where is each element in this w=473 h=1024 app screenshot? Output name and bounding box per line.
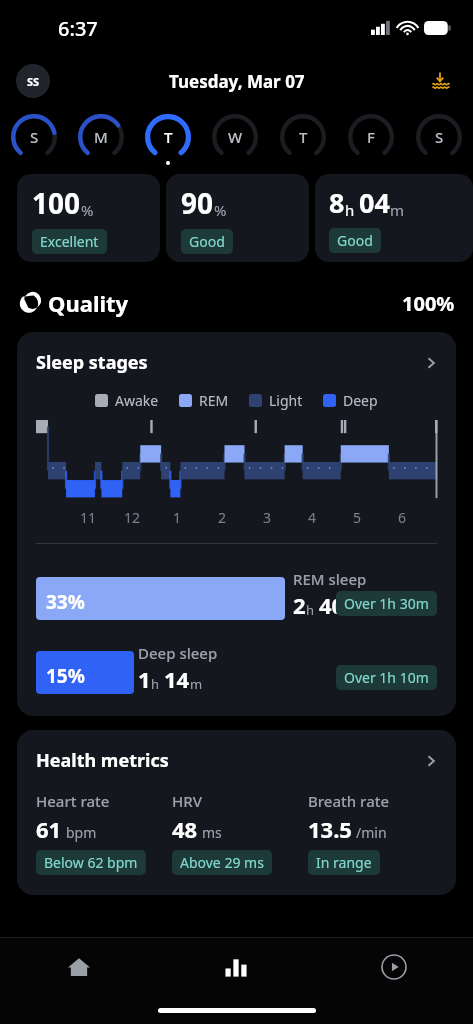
staticText: M [94,127,108,147]
staticText: bpm [66,823,97,842]
staticText: 40 [319,590,345,620]
button[interactable]: Statistics [157,938,315,996]
staticText: T [299,127,308,147]
staticText: m [345,601,358,619]
button[interactable]: T [269,106,337,168]
staticText: % [214,200,227,220]
staticText: Over 1h 10m [344,668,429,687]
staticText: Deep [343,391,378,410]
staticText: 11 [80,508,97,527]
staticText: S [435,127,444,147]
button[interactable]: M [67,106,134,168]
staticText: 6 [398,508,407,527]
staticText: 8 [329,184,345,221]
staticText: 13.5 [308,814,352,844]
staticText: Light [269,391,303,410]
staticText: /min [356,823,387,842]
staticText: 100% [402,290,455,317]
staticText: W [228,127,243,147]
staticText: 61 [36,814,62,844]
staticText: 100 [32,184,81,222]
button[interactable]: Download [425,66,455,96]
staticText: S [30,127,39,147]
staticText: REM sleep [293,569,367,589]
staticText: h [151,675,160,693]
button[interactable]: F [337,106,405,168]
button[interactable]: Play [315,938,473,996]
button[interactable]: Health metrics [17,730,456,777]
staticText: 90 [181,184,214,222]
staticText: HRV [172,791,202,811]
staticText: T [164,127,173,147]
staticText: 12 [124,508,141,527]
button[interactable]: Open details [422,752,440,770]
staticText: F [367,127,375,147]
staticText: Below 62 bpm [44,853,138,872]
staticText: Awake [115,391,159,410]
staticText: SS [27,74,40,89]
button[interactable]: Sleep stages [17,332,456,379]
button[interactable]: Home [0,938,157,996]
button[interactable]: 8 [315,174,473,262]
staticText: Above 29 ms [180,853,264,872]
button[interactable]: Open details [422,354,440,372]
staticText: 2 [293,590,306,620]
button[interactable]: Profile [16,64,50,98]
staticText: 04 [359,184,390,221]
staticText: 15% [46,663,85,689]
button[interactable]: 100 [17,174,160,262]
staticText: In range [316,853,372,872]
staticText: Deep sleep [138,643,218,663]
staticText: Good [189,232,225,251]
staticText: 14 [164,664,190,694]
staticText: REM [199,391,229,410]
staticText: 1 [173,508,182,527]
staticText: h [306,601,315,619]
button[interactable]: S [0,106,67,168]
staticText: Heart rate [36,791,110,811]
button[interactable]: S [405,106,473,168]
staticText: 48 [172,814,198,844]
staticText: % [81,200,94,220]
staticText: Over 1h 30m [344,594,429,613]
staticText: Health metrics [36,748,169,773]
staticText: 33% [46,589,85,615]
staticText: Excellent [40,232,99,251]
button[interactable]: W [201,106,269,168]
staticText: 6:37 [58,15,98,42]
staticText: ms [202,823,222,842]
staticText: 5 [353,508,362,527]
button[interactable]: T [134,106,201,168]
staticText: Breath rate [308,791,390,811]
staticText: Sleep stages [36,350,148,375]
staticText: m [190,675,203,693]
staticText: 2 [218,508,227,527]
staticText: h [345,200,355,220]
button[interactable]: 90 [166,174,309,262]
staticText: m [390,200,405,220]
staticText: 1 [138,664,151,694]
staticText: Tuesday, Mar 07 [169,70,305,93]
staticText: 4 [308,508,317,527]
staticText: Good [337,231,373,250]
staticText: 3 [263,508,272,527]
staticText: Quality [48,288,129,318]
